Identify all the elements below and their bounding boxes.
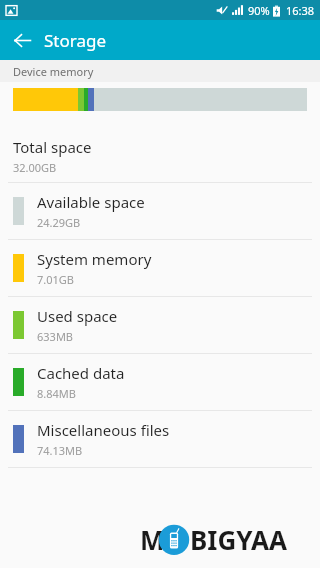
staticText: BIGYAAN [190, 522, 306, 555]
staticText: 74.13MB [37, 443, 83, 458]
button[interactable]: Used space [0, 297, 320, 353]
staticText: 8.84MB [37, 386, 76, 401]
staticText: Total space [13, 137, 92, 157]
staticText: Used space [37, 306, 118, 326]
staticText: 633MB [37, 329, 74, 344]
button[interactable]: Total space [0, 133, 320, 182]
button[interactable]: Available space [0, 183, 320, 239]
staticText: 16:38 [286, 3, 315, 18]
staticText: 90% [248, 3, 270, 18]
staticText: Cached data [37, 363, 125, 383]
staticText: M [140, 522, 165, 555]
staticText: Available space [37, 192, 145, 212]
staticText: Miscellaneous files [37, 420, 170, 440]
staticText: Device memory [13, 64, 94, 79]
staticText: 7.01GB [37, 272, 74, 287]
button[interactable]: Back [7, 25, 37, 55]
button[interactable]: Cached data [0, 354, 320, 410]
staticText: System memory [37, 249, 152, 269]
staticText: Storage [44, 29, 107, 52]
button[interactable]: Miscellaneous files [0, 411, 320, 467]
staticText: 24.29GB [37, 215, 81, 230]
button[interactable]: System memory [0, 240, 320, 296]
staticText: 32.00GB [13, 160, 57, 175]
